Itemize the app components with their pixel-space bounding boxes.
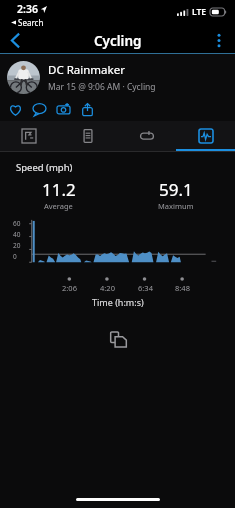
staticText: Maximum xyxy=(158,201,194,211)
button[interactable]: Map xyxy=(0,121,58,151)
staticText: Mar 15 @ 9:06 AM · Cycling xyxy=(48,81,156,93)
button[interactable]: Laps xyxy=(117,121,176,151)
button[interactable]: Add photo xyxy=(55,101,71,117)
staticText: 2:06 xyxy=(62,283,77,293)
button[interactable]: Charts xyxy=(176,121,235,151)
button[interactable]: Comment xyxy=(31,101,47,117)
staticText: 60 xyxy=(13,219,21,228)
staticText: 59.1 xyxy=(159,178,193,201)
staticText: Speed (mph) xyxy=(16,161,73,174)
staticText: 11.2 xyxy=(42,178,76,201)
button[interactable]: Details xyxy=(58,121,117,151)
button[interactable]: Like xyxy=(7,101,23,117)
staticText: Cycling xyxy=(94,32,142,50)
staticText: DC Rainmaker xyxy=(48,62,125,78)
staticText: LTE xyxy=(192,6,207,18)
staticText: 4:20 xyxy=(100,283,115,293)
staticText: 0 xyxy=(13,252,17,261)
staticText: Search xyxy=(18,17,44,28)
button[interactable]: Compare xyxy=(105,326,131,352)
staticText: Average xyxy=(44,201,73,211)
staticText: 2:36 xyxy=(17,2,38,16)
button[interactable]: More options xyxy=(206,28,232,53)
staticText: 6:34 xyxy=(138,283,153,293)
staticText: Time (h:m:s) xyxy=(92,296,144,308)
button[interactable]: DC Rainmaker xyxy=(0,54,235,100)
button[interactable]: Share xyxy=(79,101,95,117)
staticText: 20 xyxy=(13,241,21,250)
staticText: 8:48 xyxy=(175,283,190,293)
button[interactable]: Back xyxy=(2,28,28,53)
staticText: 40 xyxy=(13,230,21,239)
